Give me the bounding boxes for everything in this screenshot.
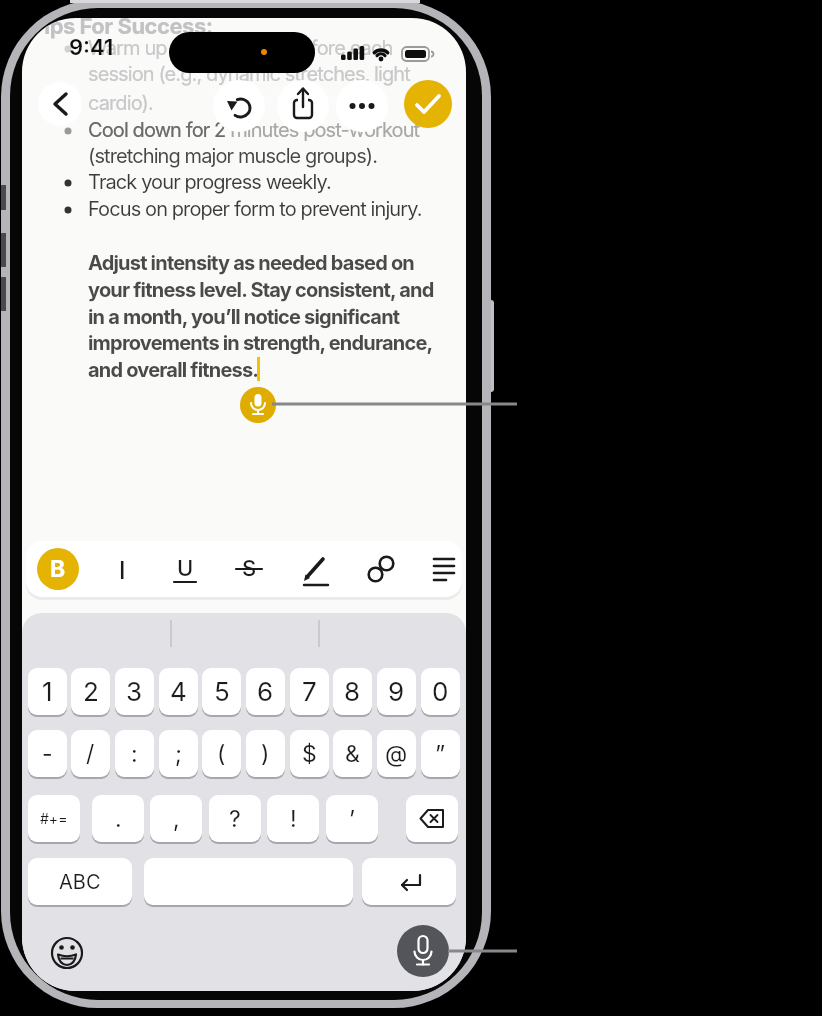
staticText: 4 xyxy=(170,676,187,707)
staticText: 9 xyxy=(388,676,405,707)
button[interactable] xyxy=(428,551,460,587)
button[interactable] xyxy=(234,551,266,587)
staticText: S xyxy=(242,555,257,582)
staticText: ? xyxy=(229,805,241,833)
button[interactable]: / xyxy=(71,730,110,779)
staticText: (stretching major muscle groups). xyxy=(88,144,378,168)
staticText: , xyxy=(173,805,180,833)
button[interactable]: 0 xyxy=(421,668,460,717)
button[interactable] xyxy=(240,387,276,423)
staticText: . xyxy=(115,805,122,833)
staticText: cardio). xyxy=(88,91,153,115)
staticText: session (e.g., dynamic stretches, light xyxy=(88,62,410,86)
button[interactable]: & xyxy=(333,730,372,779)
button[interactable] xyxy=(336,80,388,132)
button[interactable]: ? xyxy=(209,795,261,844)
button[interactable]: 9 xyxy=(377,668,416,717)
button[interactable]: 7 xyxy=(290,668,329,717)
button[interactable] xyxy=(144,858,353,907)
staticText: 9:41 xyxy=(69,34,114,58)
button[interactable] xyxy=(300,551,332,587)
staticText: #+= xyxy=(40,810,68,827)
button[interactable] xyxy=(277,80,329,132)
button[interactable] xyxy=(404,80,452,128)
staticText: ; xyxy=(175,740,182,768)
button[interactable]: 8 xyxy=(333,668,372,717)
staticText: improvements in strength, endurance, xyxy=(88,331,433,355)
button[interactable] xyxy=(213,80,265,132)
staticText: 6 xyxy=(257,676,274,707)
staticText: U xyxy=(177,555,194,582)
staticText: / xyxy=(86,740,95,768)
button[interactable]: ; xyxy=(159,730,198,779)
button[interactable]: @ xyxy=(377,730,416,779)
staticText: 5 xyxy=(214,676,230,707)
staticText: Tips For Success: xyxy=(30,18,213,40)
staticText: 8 xyxy=(344,676,361,707)
button[interactable] xyxy=(397,925,449,977)
button[interactable] xyxy=(406,795,458,844)
staticText: ABC xyxy=(59,870,101,894)
button[interactable]: 6 xyxy=(246,668,285,717)
button[interactable]: ) xyxy=(246,730,285,779)
staticText: in a month, you’ll notice significant xyxy=(88,305,400,329)
button[interactable] xyxy=(107,551,139,587)
staticText: Focus on proper form to prevent injury. xyxy=(88,197,422,221)
button[interactable]: ! xyxy=(267,795,319,844)
button[interactable]: 5 xyxy=(202,668,241,717)
staticText: $ xyxy=(302,740,317,768)
staticText: ” xyxy=(435,740,446,768)
button[interactable]: #+= xyxy=(28,795,80,844)
staticText: 2 xyxy=(83,676,99,707)
staticText: 7 xyxy=(302,676,317,707)
button[interactable]: 3 xyxy=(115,668,154,717)
staticText: ) xyxy=(261,740,270,768)
staticText: 1 xyxy=(42,676,53,707)
staticText: & xyxy=(345,740,360,768)
staticText: Adjust intensity as needed based on xyxy=(88,251,415,275)
button[interactable] xyxy=(38,82,82,126)
staticText: - xyxy=(42,740,53,768)
staticText: ( xyxy=(217,740,226,768)
button[interactable]: 2 xyxy=(71,668,110,717)
staticText: ’ xyxy=(349,805,355,833)
button[interactable] xyxy=(362,858,456,907)
button[interactable]: ( xyxy=(202,730,241,779)
button[interactable]: . xyxy=(92,795,144,844)
button[interactable]: , xyxy=(150,795,202,844)
staticText: I xyxy=(119,556,126,583)
staticText: Cool down for 2 xyxy=(88,118,226,142)
staticText: your fitness level. Stay consistent, and xyxy=(88,278,434,302)
staticText: B xyxy=(50,555,66,583)
staticText: Warm up for 5 minutes before each xyxy=(88,36,393,60)
staticText: ! xyxy=(290,805,297,833)
button[interactable] xyxy=(365,551,397,587)
button[interactable]: 1 xyxy=(28,668,67,717)
staticText: and overall fitness. xyxy=(88,358,259,382)
button[interactable] xyxy=(170,551,202,587)
staticText: Track your progress weekly. xyxy=(88,170,331,194)
button[interactable] xyxy=(49,935,85,971)
button[interactable]: B xyxy=(37,548,79,590)
button[interactable]: : xyxy=(115,730,154,779)
button[interactable]: $ xyxy=(290,730,329,779)
staticText: : xyxy=(131,740,138,768)
button[interactable]: 4 xyxy=(159,668,198,717)
staticText: @ xyxy=(385,740,408,768)
button[interactable]: ” xyxy=(421,730,460,779)
button[interactable]: - xyxy=(28,730,67,779)
staticText: Cool down for 2 minutes post-workout xyxy=(88,118,420,142)
button[interactable]: ’ xyxy=(326,795,378,844)
staticText: 3 xyxy=(126,676,143,707)
button[interactable]: ABC xyxy=(28,858,132,907)
staticText: 0 xyxy=(432,676,449,707)
